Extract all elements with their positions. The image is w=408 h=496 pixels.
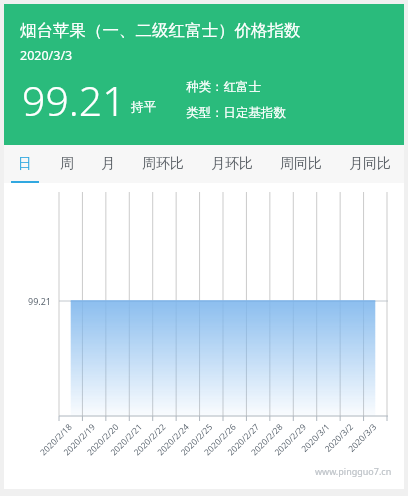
staticText: 持平	[131, 99, 156, 115]
staticText: 99.21	[22, 72, 126, 128]
staticText: 月环比	[211, 155, 253, 173]
staticText: 种类：红富士	[186, 79, 261, 95]
staticText: 烟台苹果（一、二级红富士）价格指数	[20, 20, 301, 41]
staticText: 周环比	[142, 155, 184, 173]
staticText: 月同比	[349, 155, 391, 173]
button[interactable]: 周	[46, 145, 87, 183]
button[interactable]: 月同比	[335, 145, 404, 183]
button[interactable]: 月	[87, 145, 128, 183]
staticText: 类型：日定基指数	[186, 105, 286, 121]
staticText: 2020/3/3	[20, 47, 73, 64]
button[interactable]: 日	[4, 145, 46, 183]
button[interactable]: 月环比	[197, 145, 266, 183]
staticText: 周	[60, 155, 74, 173]
staticText: 周同比	[280, 155, 322, 173]
staticText: 日	[18, 155, 32, 173]
staticText: 月	[101, 155, 115, 173]
button[interactable]: 周同比	[266, 145, 335, 183]
button[interactable]: 周环比	[128, 145, 197, 183]
